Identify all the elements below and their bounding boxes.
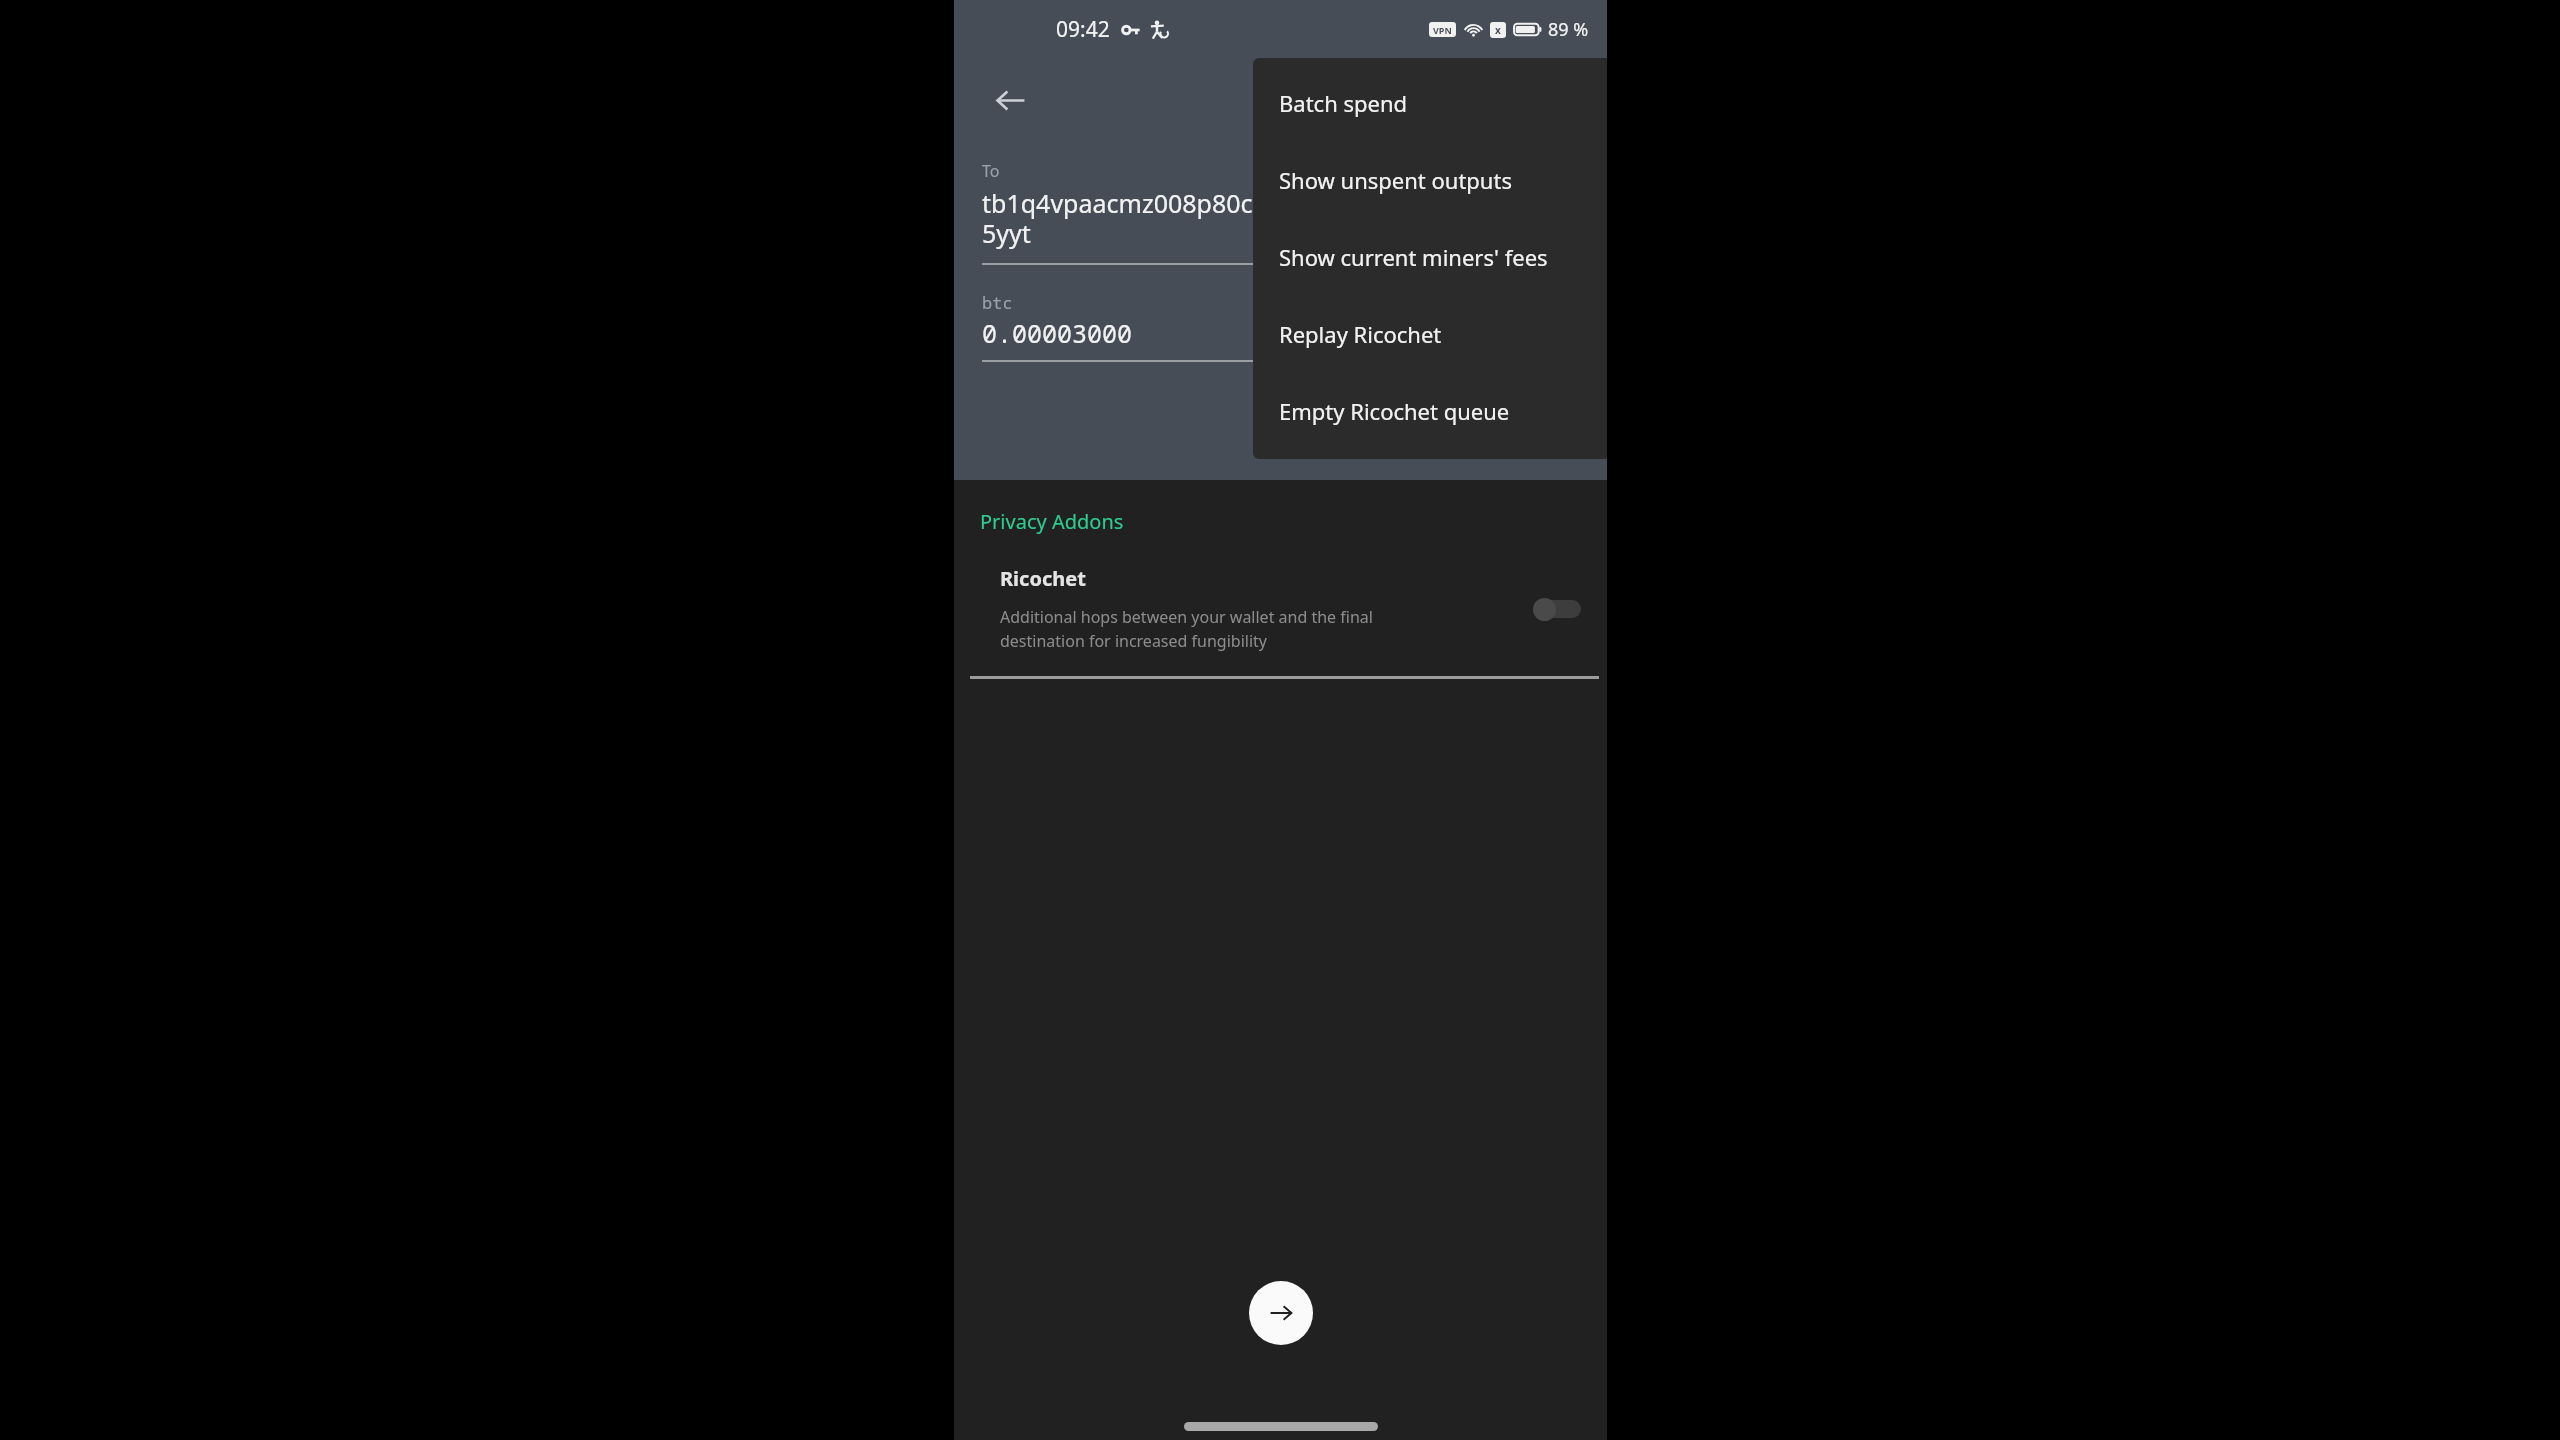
button[interactable]: Back xyxy=(980,70,1040,130)
staticText: Empty Ricochet queue xyxy=(1279,396,1510,426)
button[interactable]: Batch spend xyxy=(1253,64,1607,141)
staticText: To xyxy=(982,160,1000,182)
button[interactable]: Ricochet xyxy=(954,561,1607,662)
staticText: tb1q4vpaacmz008p80cu9n8e3g8w5sy6jmnt8a 5… xyxy=(982,186,1526,251)
button[interactable]: Show current miners' fees xyxy=(1253,218,1607,295)
staticText: Privacy Addons xyxy=(980,508,1124,535)
staticText: 0.00003000 xyxy=(982,316,1133,350)
staticText: Ricochet xyxy=(1000,565,1086,592)
staticText: Total available: 0.00021000 btc xyxy=(982,378,1579,401)
button[interactable]: Show unspent outputs xyxy=(1253,141,1607,218)
button[interactable]: Toggle Ricochet xyxy=(1533,592,1585,626)
staticText: x xyxy=(1495,23,1501,37)
staticText: Additional hops between your wallet and … xyxy=(1000,606,1373,652)
staticText: 89 % xyxy=(1548,17,1589,42)
staticText: VPN xyxy=(1433,24,1452,36)
staticText: Batch spend xyxy=(1279,88,1408,118)
staticText: Replay Ricochet xyxy=(1279,319,1442,349)
staticText: btc xyxy=(982,291,1013,314)
staticText: Show unspent outputs xyxy=(1279,165,1512,195)
button[interactable]: Replay Ricochet xyxy=(1253,295,1607,372)
staticText: 09:42 xyxy=(1056,15,1110,44)
button[interactable]: Empty Ricochet queue xyxy=(1253,372,1607,449)
staticText: Show current miners' fees xyxy=(1279,242,1548,272)
button[interactable]: Next xyxy=(1249,1281,1313,1345)
